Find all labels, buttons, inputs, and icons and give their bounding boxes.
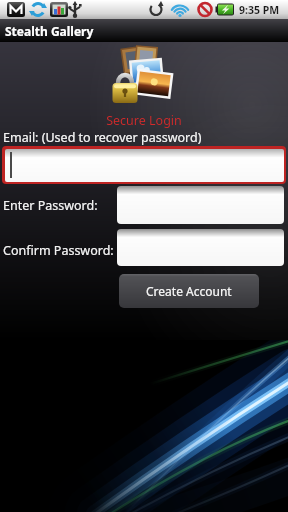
- button[interactable]: [2, 146, 286, 184]
- staticText: Create Account: [146, 283, 232, 299]
- staticText: Confirm Password:: [3, 242, 114, 259]
- button[interactable]: Create Account: [119, 274, 259, 308]
- staticText: Enter Password:: [3, 197, 98, 214]
- staticText: Stealth Gallery: [5, 23, 94, 39]
- staticText: Email: (Used to recover password): [3, 129, 202, 146]
- staticText: Secure Login: [0, 112, 288, 129]
- staticText: 9:35 PM: [239, 3, 280, 17]
- button[interactable]: [117, 186, 284, 224]
- button[interactable]: [117, 229, 284, 266]
